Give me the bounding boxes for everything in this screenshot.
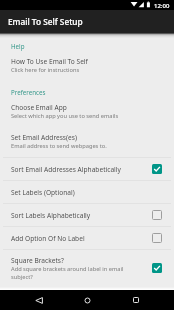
staticText: Choose Email App [11,103,67,112]
staticText: Sort Email Addresses Alphabetically [11,165,121,174]
button[interactable]: Sort Labels Alphabetically [0,204,174,226]
staticText: Sort Labels Alphabetically [11,211,91,220]
staticText: 12:00 [154,2,170,10]
staticText: Add Option Of No Label [11,234,85,243]
button[interactable]: Home [77,290,97,310]
button[interactable]: Square Brackets? [0,250,174,286]
staticText: Select which app you use to send emails [11,112,119,120]
button[interactable]: Choose Email App [0,96,174,126]
staticText: Email address to send webpages to. [11,142,107,150]
button[interactable]: How To Use Email To Self [0,50,174,81]
staticText: Preferences [11,88,46,96]
button[interactable]: Back [29,290,49,310]
staticText: Click here for instructions [11,66,80,74]
staticText: Email To Self Setup [8,16,83,27]
staticText: Set Labels (Optional) [11,188,75,197]
button[interactable]: Set Email Address(es) [0,126,174,157]
staticText: How To Use Email To Self [11,57,88,66]
button[interactable]: Sort Email Addresses Alphabetically [0,158,174,180]
button[interactable]: Add Option Of No Label [0,227,174,249]
staticText: Square Brackets? [11,256,64,265]
staticText: Set Email Address(es) [11,133,77,142]
staticText: Add square brackets around label in emai… [11,265,135,281]
staticText: Help [11,42,25,50]
button[interactable]: Recent apps [126,290,146,310]
button[interactable]: Set Labels (Optional) [0,181,174,203]
